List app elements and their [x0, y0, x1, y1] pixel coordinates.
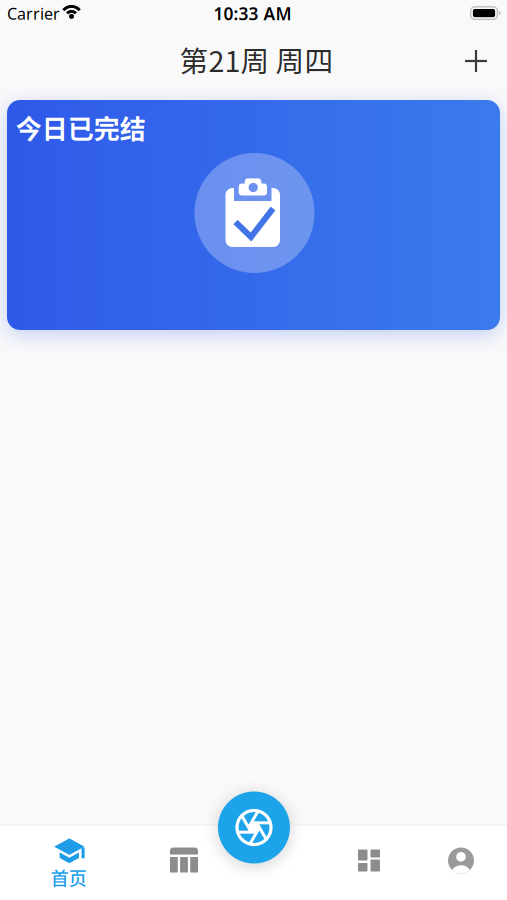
staticText: 今日已完结	[16, 108, 146, 146]
button[interactable]: 首页	[23, 831, 113, 893]
button[interactable]: 今日已完结	[7, 100, 500, 330]
button[interactable]: Camera	[219, 792, 289, 862]
staticText: Carrier	[7, 3, 60, 24]
button[interactable]: Add	[463, 48, 489, 74]
staticText: 10:33 AM	[213, 2, 291, 25]
staticText: 首页	[51, 864, 87, 890]
staticText: 第21周 周四	[179, 39, 333, 80]
button[interactable]: Profile	[421, 826, 501, 894]
button[interactable]: Schedule	[144, 826, 224, 894]
button[interactable]: Apps	[329, 826, 409, 894]
